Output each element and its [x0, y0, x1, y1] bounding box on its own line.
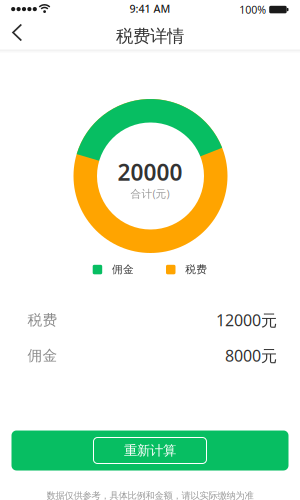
staticText: 佣金	[27, 347, 57, 365]
staticText: 8000元	[225, 345, 277, 366]
staticText: 税费详情	[116, 25, 184, 47]
button[interactable]: Back	[0, 20, 44, 50]
staticText: 佣金	[112, 263, 134, 276]
staticText: 税费	[185, 263, 207, 276]
staticText: 9:41 AM	[129, 1, 170, 16]
staticText: 100%	[239, 2, 266, 17]
staticText: 合计(元)	[130, 186, 169, 201]
staticText: 重新计算	[124, 442, 176, 459]
button[interactable]: 重新计算	[11, 430, 288, 470]
staticText: 数据仅供参考，具体比例和金额，请以实际缴纳为准	[46, 490, 253, 500]
staticText: 20000	[117, 157, 182, 187]
staticText: 税费	[27, 311, 57, 329]
staticText: 12000元	[216, 309, 277, 331]
